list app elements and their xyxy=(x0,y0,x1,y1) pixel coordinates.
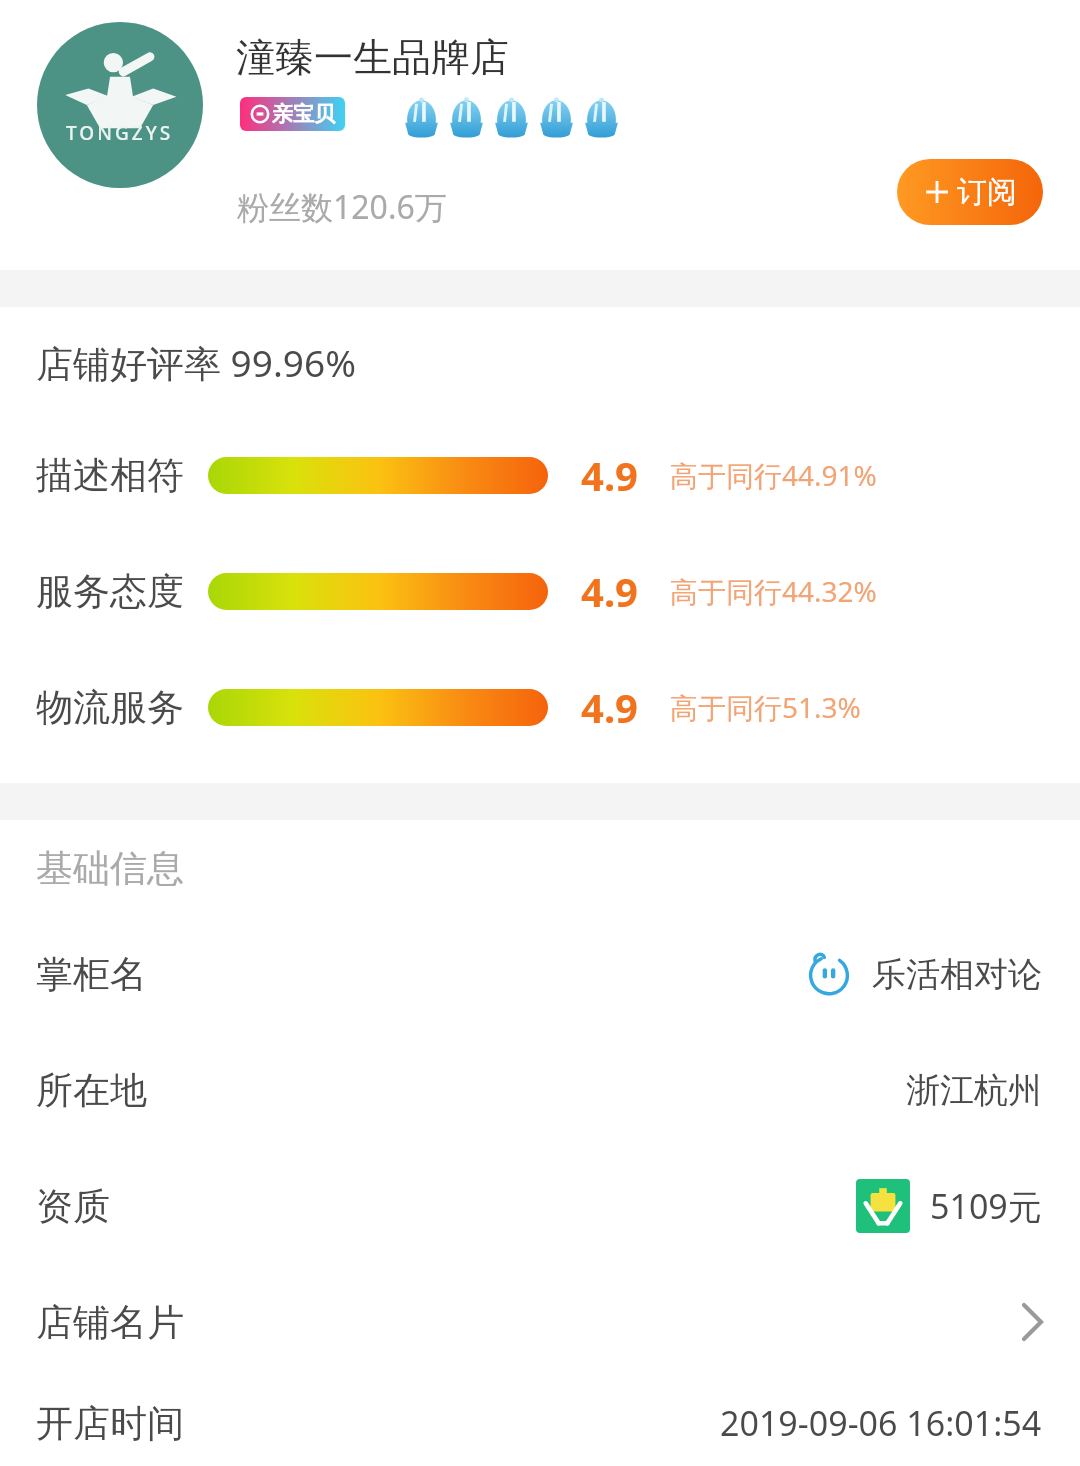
staticText: 4.9 xyxy=(581,564,638,618)
staticText: 基础信息 xyxy=(36,845,184,892)
staticText: 掌柜名 xyxy=(36,951,806,998)
staticText: 服务态度 xyxy=(36,568,184,615)
staticText: 2019-09-06 16:01:54 xyxy=(720,1400,1042,1446)
staticText: 高于同行51.3% xyxy=(670,688,861,726)
staticText: 物流服务 xyxy=(36,684,184,731)
staticText: 浙江杭州 xyxy=(906,1069,1042,1112)
staticText: 亲宝贝 xyxy=(272,101,335,127)
staticText: 店铺名片 xyxy=(36,1299,1022,1346)
staticText: 描述相符 xyxy=(36,452,184,499)
staticText: 开店时间 xyxy=(36,1400,720,1447)
button[interactable]: 亲宝贝 xyxy=(240,97,345,131)
button[interactable]: 订阅 xyxy=(897,159,1043,225)
staticText: 5109元 xyxy=(930,1183,1042,1229)
staticText: 4.9 xyxy=(581,680,638,734)
staticText: TONGZYS xyxy=(66,120,174,146)
staticText: 高于同行44.91% xyxy=(670,456,877,494)
staticText: 订阅 xyxy=(957,173,1017,211)
staticText: 所在地 xyxy=(36,1067,906,1114)
staticText: 4.9 xyxy=(581,448,638,502)
staticText: 高于同行44.32% xyxy=(670,572,877,610)
staticText: 乐活相对论 xyxy=(872,953,1042,996)
staticText: 店铺好评率 99.96% xyxy=(36,337,356,388)
other: 查看店铺名片 xyxy=(1022,1305,1042,1339)
staticText: 粉丝数120.6万 xyxy=(237,185,447,229)
button[interactable]: Shop avatar xyxy=(37,22,203,188)
staticText: 潼臻一生品牌店 xyxy=(236,33,509,82)
staticText: 资质 xyxy=(36,1183,856,1230)
button[interactable]: 店铺名片 xyxy=(0,1264,1080,1380)
